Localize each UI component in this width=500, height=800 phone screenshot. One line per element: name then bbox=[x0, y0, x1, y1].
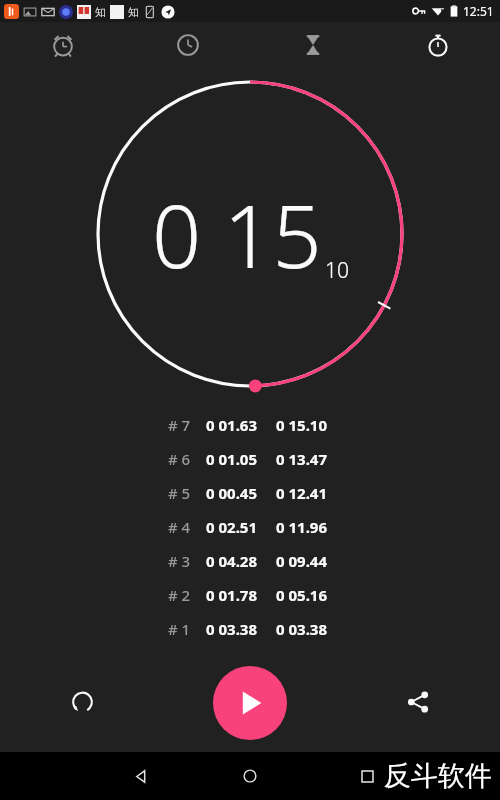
staticText: # 2 bbox=[168, 585, 206, 605]
button[interactable]: Alarm bbox=[0, 22, 125, 68]
button[interactable]: Recents bbox=[350, 759, 384, 793]
staticText: # 5 bbox=[168, 483, 206, 503]
staticText: 反斗软件 bbox=[384, 759, 492, 793]
button[interactable]: # 1 bbox=[0, 612, 500, 646]
button[interactable]: Share bbox=[394, 678, 442, 726]
staticText: 0 09.44 bbox=[276, 551, 328, 571]
button[interactable]: # 4 bbox=[0, 510, 500, 544]
button[interactable]: # 7 bbox=[0, 408, 500, 442]
staticText: 0 00.45 bbox=[206, 483, 276, 503]
button[interactable]: Start bbox=[213, 666, 287, 740]
staticText: 0 02.51 bbox=[206, 517, 276, 537]
button[interactable]: Reset bbox=[58, 678, 106, 726]
staticText: 知 bbox=[95, 5, 106, 19]
staticText: 0 01.78 bbox=[206, 585, 276, 605]
staticText: # 7 bbox=[168, 415, 206, 435]
staticText: 0 11.96 bbox=[276, 517, 328, 537]
button[interactable]: # 6 bbox=[0, 442, 500, 476]
staticText: # 3 bbox=[168, 551, 206, 571]
staticText: 0 03.38 bbox=[276, 619, 328, 639]
staticText: 0 03.38 bbox=[206, 619, 276, 639]
button[interactable]: # 2 bbox=[0, 578, 500, 612]
staticText: 0 05.16 bbox=[276, 585, 328, 605]
button[interactable]: Back bbox=[120, 756, 160, 796]
button[interactable]: Home bbox=[230, 756, 270, 796]
staticText: 0 15 bbox=[152, 176, 322, 293]
staticText: # 4 bbox=[168, 517, 206, 537]
button[interactable]: # 3 bbox=[0, 544, 500, 578]
staticText: 0 01.05 bbox=[206, 449, 276, 469]
staticText: 0 04.28 bbox=[206, 551, 276, 571]
staticText: 知 bbox=[128, 5, 139, 19]
staticText: 0 13.47 bbox=[276, 449, 328, 469]
button[interactable]: # 5 bbox=[0, 476, 500, 510]
staticText: # 1 bbox=[168, 619, 206, 639]
button[interactable]: Clock bbox=[125, 22, 250, 68]
staticText: 10 bbox=[325, 256, 349, 285]
staticText: 0 15.10 bbox=[276, 415, 328, 435]
staticText: 12:51 bbox=[463, 3, 494, 19]
staticText: 0 01.63 bbox=[206, 415, 276, 435]
button[interactable]: Stopwatch bbox=[375, 22, 500, 68]
button[interactable]: Timer bbox=[250, 22, 375, 68]
staticText: # 6 bbox=[168, 449, 206, 469]
staticText: 0 12.41 bbox=[276, 483, 328, 503]
